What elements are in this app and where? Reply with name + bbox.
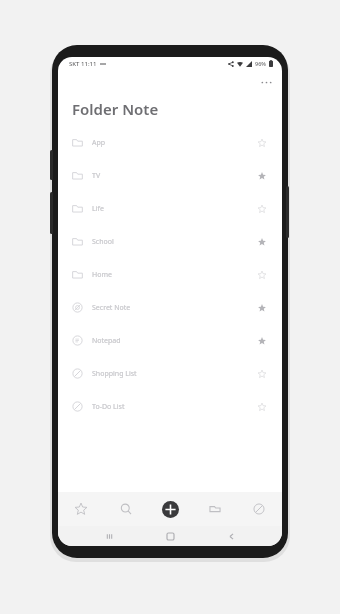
staticText: Home	[92, 270, 112, 280]
staticText: Notepad	[92, 336, 121, 346]
staticText: 96%	[255, 60, 266, 67]
button[interactable]: Unfavorite	[254, 234, 270, 250]
staticText: Life	[92, 204, 104, 214]
button[interactable]: Folders	[202, 496, 228, 522]
button[interactable]: Unfavorite	[254, 333, 270, 349]
button[interactable]: Favorite	[254, 399, 270, 415]
button[interactable]: Unfavorite	[254, 168, 270, 184]
button[interactable]: Favorites	[68, 496, 94, 522]
button[interactable]: Recents	[99, 526, 119, 546]
button[interactable]: Add note	[157, 496, 183, 522]
button[interactable]: Back	[221, 526, 241, 546]
button[interactable]: Shopping List	[58, 357, 282, 390]
staticText: Secret Note	[92, 303, 131, 313]
button[interactable]: Secret Note	[58, 291, 282, 324]
button[interactable]: To-Do List	[58, 390, 282, 423]
button[interactable]: Tasks	[246, 496, 272, 522]
button[interactable]: Search	[113, 496, 139, 522]
button[interactable]: Favorite	[254, 135, 270, 151]
button[interactable]: More options	[256, 72, 276, 92]
staticText: School	[92, 237, 114, 247]
staticText: SKT 11:11	[69, 60, 97, 68]
button[interactable]: TV	[58, 159, 282, 192]
button[interactable]: Notepad	[58, 324, 282, 357]
button[interactable]: Home	[58, 258, 282, 291]
button[interactable]: Life	[58, 192, 282, 225]
staticText: Folder Note	[72, 99, 159, 119]
staticText: To-Do List	[92, 402, 125, 412]
button[interactable]: Favorite	[254, 366, 270, 382]
staticText: Shopping List	[92, 369, 137, 379]
staticText: App	[92, 138, 106, 148]
button[interactable]: Home	[160, 526, 180, 546]
button[interactable]: App	[58, 126, 282, 159]
button[interactable]: Favorite	[254, 267, 270, 283]
button[interactable]: Unfavorite	[254, 300, 270, 316]
staticText: TV	[92, 171, 101, 181]
button[interactable]: School	[58, 225, 282, 258]
button[interactable]: Favorite	[254, 201, 270, 217]
